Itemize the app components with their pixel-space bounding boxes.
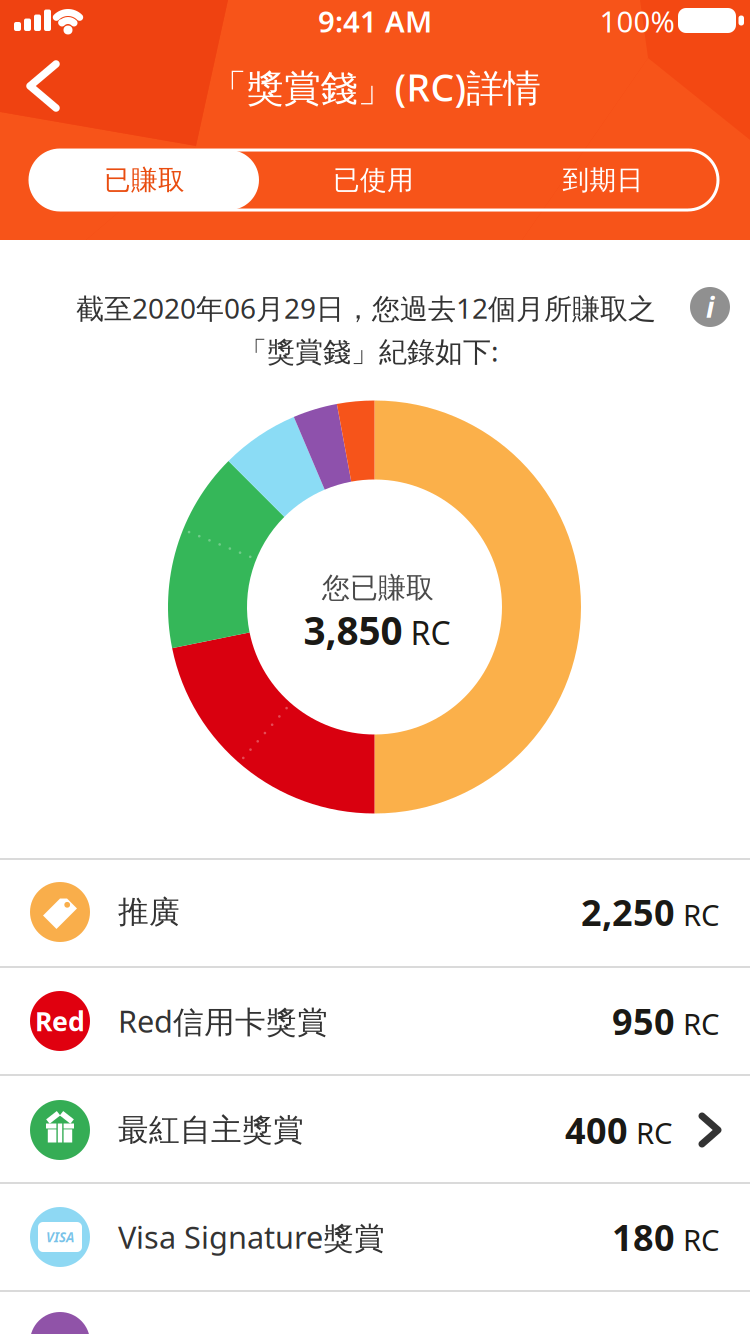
staticText: VISA (46, 1228, 74, 1246)
staticText: 400 RC (565, 1106, 673, 1154)
staticText: 9:41 AM (318, 1, 432, 40)
staticText: 180 RC (612, 1213, 720, 1261)
staticText: 到期日 (562, 164, 643, 196)
staticText: 2,250 RC (581, 888, 720, 936)
staticText: 「獎賞錢」紀錄如下: (239, 332, 499, 370)
staticText: 您已賺取 (322, 571, 434, 605)
staticText: 「獎賞錢」(RC)詳情 (209, 62, 540, 112)
staticText: Red信用卡獎賞 (118, 1001, 328, 1041)
staticText: 已賺取 (104, 164, 185, 196)
staticText: Red (35, 1003, 85, 1039)
button[interactable]: Back (23, 58, 63, 114)
staticText: 950 RC (612, 997, 720, 1045)
staticText: 最紅自主獎賞 (118, 1111, 304, 1149)
button[interactable]: 到期日 (488, 150, 717, 210)
button[interactable]: More information (690, 287, 730, 327)
button[interactable]: 已使用 (259, 150, 488, 210)
staticText: 100% (599, 1, 674, 40)
staticText: 截至2020年06月29日，您過去12個月所賺取之 (76, 289, 656, 327)
staticText: 推廣 (118, 893, 180, 931)
staticText: i (706, 288, 714, 326)
button[interactable]: 已賺取 (30, 150, 259, 210)
button[interactable]: 最紅自主獎賞 (0, 1076, 750, 1182)
staticText: 已使用 (333, 164, 414, 196)
staticText: 3,850 RC (303, 604, 450, 656)
staticText: Visa Signature獎賞 (118, 1217, 385, 1257)
